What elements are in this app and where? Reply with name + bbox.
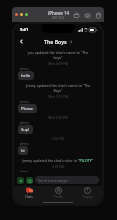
staticText: 2:56 PM bbox=[18, 137, 98, 141]
button[interactable]: Add attachment bbox=[17, 177, 24, 184]
button[interactable]: Close window bbox=[15, 13, 18, 16]
button[interactable]: Sup! bbox=[18, 125, 33, 134]
staticText: jimmy updated the chat's color to bbox=[22, 158, 78, 163]
button[interactable]: Zoom window bbox=[25, 13, 28, 16]
staticText: jimmy bbox=[20, 67, 29, 71]
button[interactable]: Profile bbox=[44, 186, 73, 200]
staticText: Send a message... bbox=[38, 178, 70, 183]
button[interactable]: Record screen bbox=[95, 12, 101, 18]
staticText: Logout bbox=[83, 195, 93, 199]
staticText: Sup! bbox=[21, 127, 30, 132]
staticText: you updated the chat's name to "The boys… bbox=[23, 50, 93, 60]
staticText: 2:59 PM bbox=[18, 165, 98, 169]
button[interactable]: Logout bbox=[73, 186, 102, 200]
button[interactable]: Chats bbox=[14, 186, 44, 200]
button[interactable]: Screenshot bbox=[84, 12, 90, 18]
staticText: Mon 4:09 PM bbox=[18, 62, 98, 66]
staticText: Wed 2:54 PM bbox=[18, 116, 98, 120]
button[interactable]: The Boys bbox=[42, 37, 75, 46]
staticText: hi bbox=[21, 148, 25, 153]
staticText: jimmy bbox=[20, 121, 29, 125]
button[interactable]: Back bbox=[16, 36, 26, 46]
staticText: Profile bbox=[54, 195, 63, 199]
staticText: "PG-DTF" bbox=[78, 158, 94, 163]
staticText: iOS 16.2 bbox=[52, 16, 65, 20]
staticText: The Boys bbox=[44, 38, 67, 45]
staticText: Chats bbox=[25, 195, 33, 199]
staticText: jimmy bbox=[20, 100, 29, 104]
staticText: jimmy bbox=[20, 170, 29, 172]
staticText: iPhone 14 bbox=[48, 10, 69, 16]
button[interactable]: hello bbox=[18, 71, 34, 80]
staticText: Mon 5:13 PM bbox=[18, 95, 98, 99]
button[interactable]: hi bbox=[18, 146, 28, 155]
button[interactable]: Please bbox=[18, 104, 37, 113]
staticText: jimmy bbox=[20, 142, 29, 146]
staticText: Please bbox=[21, 106, 34, 111]
button[interactable]: Home bbox=[73, 12, 79, 18]
button[interactable]: Send a message... bbox=[35, 176, 99, 184]
button[interactable]: Minimise window bbox=[20, 13, 23, 16]
button[interactable]: Camera bbox=[26, 177, 33, 184]
staticText: 9:41 bbox=[20, 27, 29, 33]
staticText: hello bbox=[21, 73, 31, 78]
staticText: jimmy updated the chat's name to "The Bo… bbox=[23, 83, 93, 93]
